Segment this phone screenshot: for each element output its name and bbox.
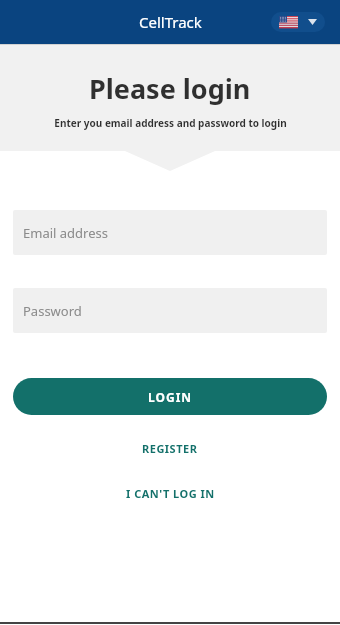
button[interactable]: Select language — [271, 12, 325, 32]
staticText: Enter you email address and password to … — [54, 116, 287, 130]
button[interactable]: LOGIN — [13, 378, 327, 415]
button[interactable]: Email address — [13, 210, 327, 255]
staticText: Password — [23, 302, 82, 320]
staticText: Please login — [89, 70, 251, 107]
staticText: CellTrack — [139, 12, 202, 32]
button[interactable]: I CAN'T LOG IN — [0, 478, 340, 509]
staticText: LOGIN — [148, 389, 193, 405]
staticText: REGISTER — [142, 441, 198, 456]
staticText: I CAN'T LOG IN — [126, 486, 215, 501]
button[interactable]: REGISTER — [0, 433, 340, 464]
staticText: Email address — [23, 224, 108, 242]
button[interactable]: Password — [13, 288, 327, 333]
